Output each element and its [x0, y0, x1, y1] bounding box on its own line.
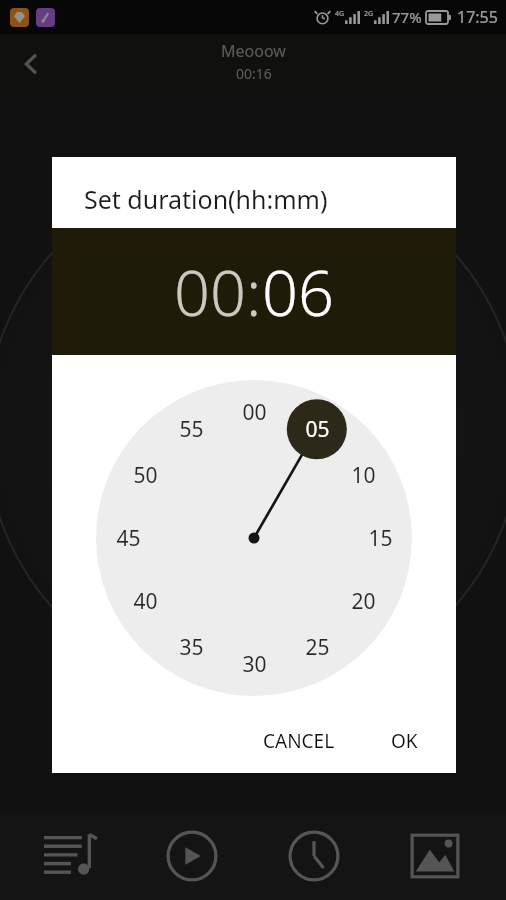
button[interactable]: OK	[377, 718, 432, 764]
staticText: 50	[133, 461, 158, 490]
staticText: Meooow	[221, 40, 286, 62]
button[interactable]: 00	[174, 249, 246, 335]
staticText: OK	[391, 728, 418, 754]
button[interactable]: Play	[142, 812, 242, 900]
staticText: 35	[179, 633, 204, 662]
button[interactable]: 55	[169, 407, 213, 451]
staticText: 4G	[335, 9, 345, 19]
button[interactable]: Playlist	[21, 812, 121, 900]
staticText: Set duration(hh:mm)	[84, 182, 328, 216]
staticText: 10	[351, 461, 376, 490]
staticText: 17:55	[457, 6, 498, 28]
staticText: 45	[116, 524, 141, 553]
button[interactable]: 50	[123, 453, 167, 497]
button[interactable]: 06	[262, 249, 334, 335]
staticText: 40	[133, 587, 158, 616]
staticText: 00:16	[236, 64, 272, 83]
staticText: 55	[179, 415, 204, 444]
button[interactable]: 10	[341, 453, 385, 497]
staticText: 25	[305, 633, 330, 662]
button[interactable]: 20	[341, 579, 385, 623]
button[interactable]: 15	[358, 516, 402, 560]
staticText: 00	[242, 398, 267, 427]
button[interactable]: Gallery	[385, 812, 485, 900]
button[interactable]: 00	[232, 390, 276, 434]
button[interactable]: 05	[295, 407, 339, 451]
staticText: 77%	[392, 7, 422, 27]
staticText: :	[246, 249, 262, 335]
button[interactable]: CANCEL	[249, 718, 349, 764]
button[interactable]: 00	[96, 380, 412, 696]
staticText: CANCEL	[263, 728, 335, 754]
button[interactable]: 25	[295, 625, 339, 669]
staticText: 20	[351, 587, 376, 616]
staticText: 15	[368, 524, 393, 553]
staticText: 2G	[364, 9, 374, 19]
button[interactable]: 35	[169, 625, 213, 669]
staticText: 30	[242, 650, 267, 679]
button[interactable]: Back	[8, 40, 56, 88]
staticText: 05	[305, 415, 330, 444]
button[interactable]: 40	[123, 579, 167, 623]
button[interactable]: 45	[106, 516, 150, 560]
button[interactable]: 30	[232, 642, 276, 686]
button[interactable]: Timer	[264, 812, 364, 900]
